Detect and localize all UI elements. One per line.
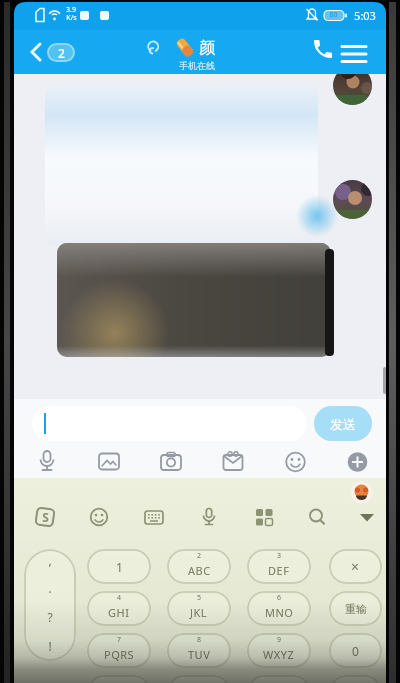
staticText: K/s xyxy=(66,13,77,22)
staticText: JKL xyxy=(190,605,208,620)
staticText: MNO xyxy=(265,605,294,620)
button[interactable]: 2 xyxy=(167,549,231,584)
button[interactable] xyxy=(88,506,110,528)
button[interactable]: 6 xyxy=(247,591,311,626)
staticText: 颜 xyxy=(199,38,215,58)
staticText: S xyxy=(42,509,49,525)
staticText: PQRS xyxy=(104,647,135,662)
staticText: 重输 xyxy=(345,602,367,616)
button[interactable]: 0 xyxy=(329,633,382,668)
staticText: 8 xyxy=(197,635,202,645)
staticText: × xyxy=(351,557,360,576)
button[interactable] xyxy=(306,506,328,528)
button[interactable] xyxy=(329,675,382,683)
staticText: 7 xyxy=(117,635,122,645)
staticText: 3.9 xyxy=(66,5,76,14)
staticText: DEF xyxy=(268,563,290,578)
button[interactable] xyxy=(24,38,48,66)
staticText: 2 xyxy=(58,45,65,61)
button[interactable] xyxy=(356,506,378,528)
staticText: ABC xyxy=(188,563,211,578)
button[interactable] xyxy=(247,675,311,683)
button[interactable]: 9 xyxy=(247,633,311,668)
button[interactable] xyxy=(340,42,368,66)
button[interactable] xyxy=(167,675,231,683)
button[interactable]: 重输 xyxy=(329,591,382,626)
button[interactable] xyxy=(159,451,183,473)
button[interactable]: 发送 xyxy=(314,406,372,441)
button[interactable]: × xyxy=(329,549,382,584)
button[interactable]: 7 xyxy=(87,633,151,668)
staticText: 80 xyxy=(329,10,338,20)
button[interactable] xyxy=(198,506,220,528)
button[interactable]: 4 xyxy=(87,591,151,626)
button[interactable] xyxy=(87,675,151,683)
staticText: GHI xyxy=(108,605,130,620)
button[interactable] xyxy=(346,451,369,474)
button[interactable] xyxy=(143,506,165,528)
staticText: WXYZ xyxy=(263,647,295,662)
staticText: 3 xyxy=(277,551,282,561)
staticText: 5:03 xyxy=(354,8,376,23)
button[interactable]: 2 xyxy=(47,43,75,62)
button[interactable] xyxy=(284,451,307,474)
staticText: 6 xyxy=(277,593,282,603)
staticText: 1 xyxy=(116,559,123,575)
staticText: TUV xyxy=(188,647,211,662)
staticText: 4 xyxy=(117,593,122,603)
button[interactable] xyxy=(32,406,307,441)
staticText: 手机在线 xyxy=(179,60,215,71)
button[interactable]: 8 xyxy=(167,633,231,668)
staticText: 5 xyxy=(197,593,202,603)
button[interactable]: S xyxy=(34,506,56,528)
staticText: . xyxy=(48,580,52,596)
button[interactable]: 3 xyxy=(247,549,311,584)
staticText: 发送 xyxy=(330,416,356,432)
button[interactable]: 1 xyxy=(87,549,151,584)
button[interactable] xyxy=(36,448,58,476)
button[interactable] xyxy=(221,451,245,473)
staticText: 9 xyxy=(277,635,282,645)
staticText: ! xyxy=(48,638,52,654)
button[interactable] xyxy=(311,37,335,61)
button[interactable]: , xyxy=(24,549,76,661)
button[interactable]: 5 xyxy=(167,591,231,626)
staticText: , xyxy=(48,552,52,568)
staticText: 2 xyxy=(197,551,202,561)
button[interactable] xyxy=(253,506,275,528)
button[interactable] xyxy=(97,451,121,473)
staticText: ? xyxy=(47,609,53,625)
staticText: 0 xyxy=(352,643,359,659)
